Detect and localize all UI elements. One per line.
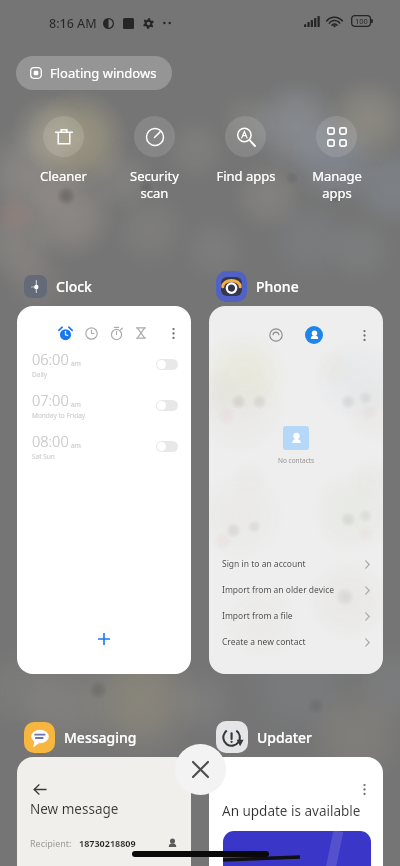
staticText: Manage apps — [312, 167, 362, 202]
staticText: Import from an older device — [222, 584, 335, 596]
button[interactable]: Tab — [105, 322, 127, 344]
staticText: Recipient: — [30, 837, 72, 849]
button[interactable]: Back — [28, 778, 50, 800]
staticText: Messaging — [64, 728, 137, 747]
staticText: Find apps — [216, 167, 276, 185]
button[interactable]: Manage apps — [291, 116, 382, 202]
staticText: 08:00 — [32, 431, 69, 451]
staticText: Import from a file — [222, 610, 293, 622]
button[interactable]: Floating windows — [16, 56, 172, 90]
staticText: Daily — [32, 370, 48, 379]
staticText: An update is available — [222, 802, 361, 820]
button[interactable]: Back — [17, 757, 191, 866]
staticText: am — [71, 359, 81, 368]
staticText: Cleaner — [40, 167, 87, 185]
button[interactable]: Tab — [80, 322, 102, 344]
button[interactable]: Create a new contact — [209, 629, 383, 655]
button[interactable]: 06:00 — [17, 347, 191, 381]
button[interactable]: Add alarm — [91, 626, 117, 652]
button[interactable]: More options — [354, 779, 374, 799]
button[interactable]: Recents — [265, 324, 287, 346]
button[interactable]: Toggle alarm — [156, 400, 178, 411]
staticText: Monday to Friday — [32, 411, 86, 420]
button[interactable]: Recents — [209, 306, 383, 674]
staticText: No contacts — [278, 456, 315, 465]
button[interactable]: Toggle alarm — [156, 441, 178, 452]
button[interactable]: More options — [354, 325, 374, 345]
staticText: 8:16 AM — [49, 15, 97, 32]
staticText: am — [71, 441, 81, 450]
button[interactable]: Import from an older device — [209, 577, 383, 603]
staticText: am — [71, 400, 81, 409]
staticText: Security scan — [130, 167, 179, 202]
button[interactable]: Toggle alarm — [156, 359, 178, 370]
button[interactable]: Security scan — [109, 116, 200, 202]
staticText: 100 — [355, 16, 368, 26]
button[interactable]: Sign in to an account — [209, 551, 383, 577]
button[interactable]: 07:00 — [17, 388, 191, 422]
staticText: 18730218809 — [79, 837, 136, 849]
staticText: Create a new contact — [222, 636, 306, 648]
staticText: Updater — [257, 728, 313, 747]
button[interactable]: Tab — [54, 322, 76, 344]
button[interactable]: Import from a file — [209, 603, 383, 629]
button[interactable]: More options — [163, 323, 183, 343]
staticText: 07:00 — [32, 390, 69, 410]
staticText: New message — [30, 800, 119, 818]
button[interactable]: 08:00 — [17, 429, 191, 463]
staticText: 06:00 — [32, 349, 69, 369]
button[interactable]: Cleaner — [18, 116, 109, 185]
staticText: Floating windows — [50, 64, 157, 82]
button[interactable]: Tab — [130, 322, 152, 344]
staticText: Sign in to an account — [222, 558, 306, 570]
button[interactable]: Close all — [175, 744, 226, 795]
staticText: Sat Sun — [32, 452, 55, 461]
button[interactable]: Find apps — [200, 116, 291, 185]
button[interactable]: More options — [209, 757, 383, 866]
staticText: Phone — [256, 277, 299, 296]
staticText: Clock — [56, 277, 92, 296]
button[interactable]: Tab — [17, 306, 191, 674]
button[interactable]: Contacts — [303, 324, 325, 346]
